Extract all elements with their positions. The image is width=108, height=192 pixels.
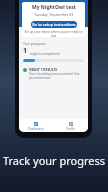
staticText: 1 <box>23 46 28 56</box>
button[interactable]: Go to setup instructions <box>31 21 77 28</box>
staticText: Set up your device when you are ready to… <box>22 30 85 37</box>
button[interactable]: Profile <box>53 119 88 132</box>
staticText: Your recording was successful. See you t… <box>29 72 80 80</box>
staticText: nights completed <box>30 51 60 56</box>
button[interactable]: Dashboard <box>19 119 53 132</box>
staticText: My NightOwl test <box>32 4 76 11</box>
staticText: Profile <box>66 127 76 131</box>
staticText: Go to setup instructions <box>32 22 76 27</box>
staticText: Dashboard <box>28 127 44 131</box>
staticText: Test progress <box>23 41 46 46</box>
staticText: Track your progress <box>0 153 108 168</box>
staticText: Tuesday, September 03 <box>34 12 74 17</box>
staticText: NIGHT 1 RESULTS <box>29 67 58 71</box>
